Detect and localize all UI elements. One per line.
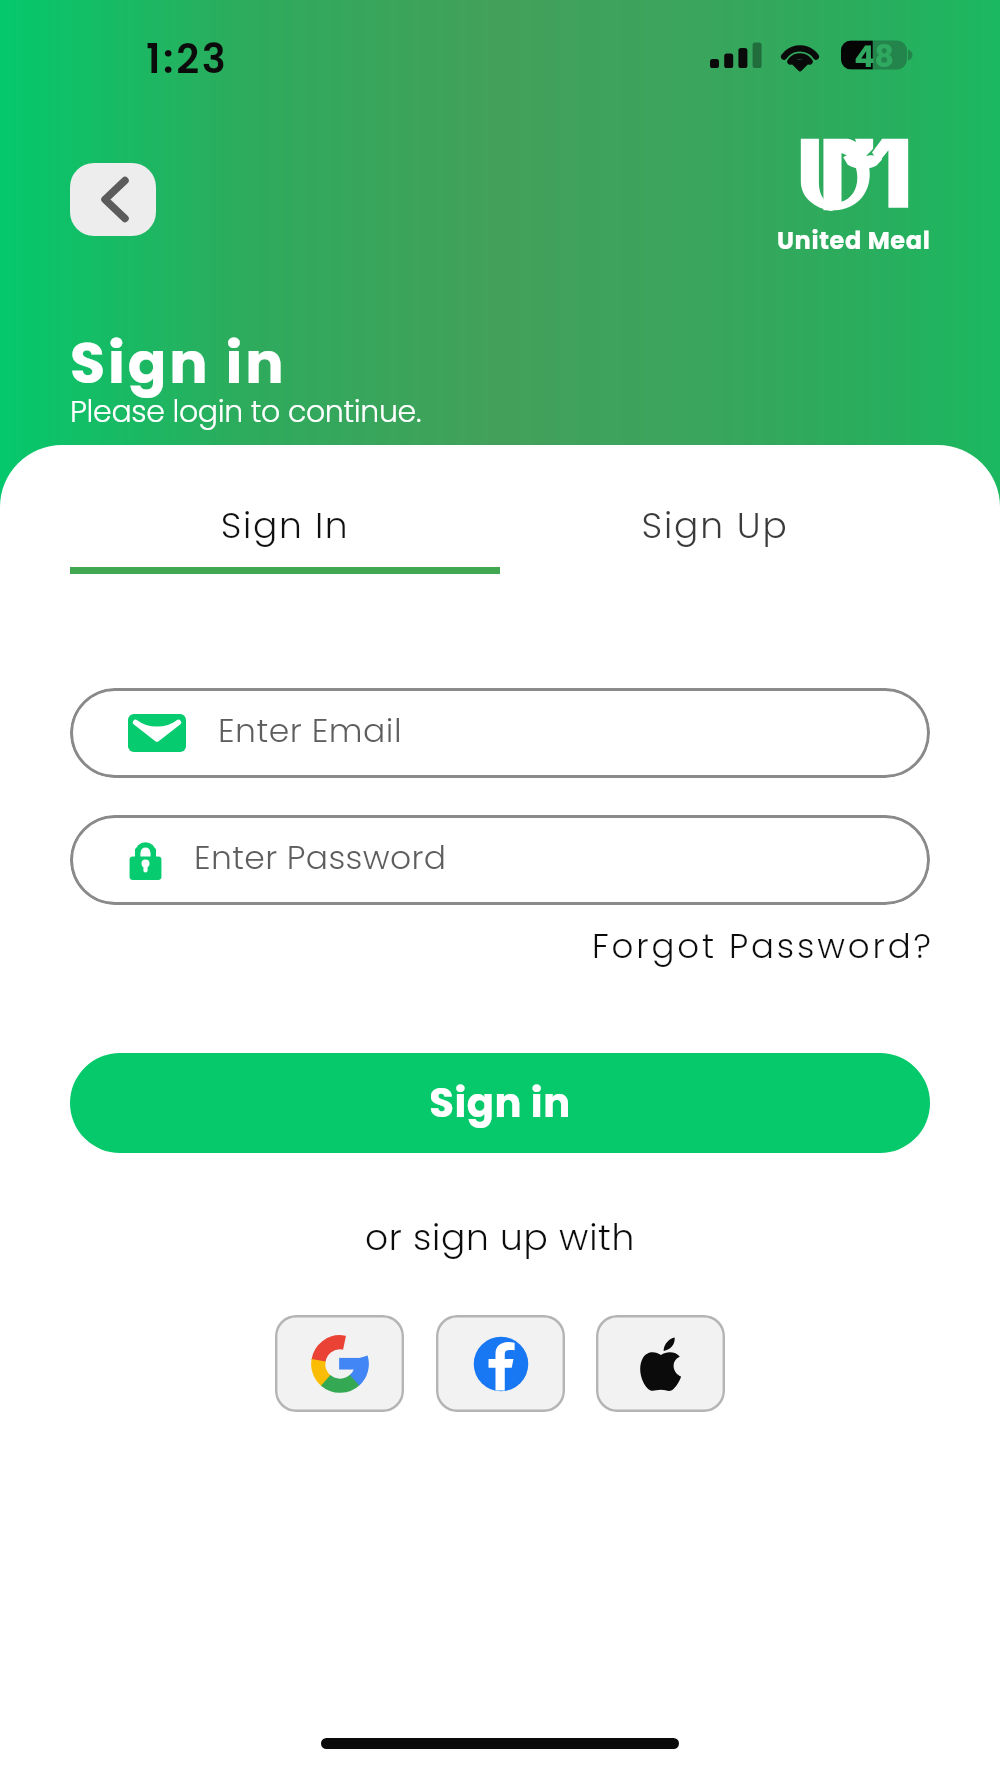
staticText: Enter Email [218, 707, 402, 753]
button[interactable] [590, 924, 934, 974]
staticText: or sign up with [0, 1212, 1000, 1270]
staticText: Please login to continue. [70, 391, 422, 433]
staticText: Forgot Password? [592, 922, 934, 970]
staticText: Sign In [70, 500, 500, 558]
button[interactable]: Sign in with Apple [596, 1315, 725, 1412]
staticText: 48 [841, 36, 907, 84]
staticText: Sign Up [500, 500, 930, 558]
button[interactable] [70, 815, 930, 905]
button[interactable]: Back [70, 163, 156, 236]
button[interactable]: Sign in with Google [275, 1315, 404, 1412]
button[interactable] [70, 688, 930, 778]
button[interactable] [500, 490, 930, 576]
button[interactable]: Sign in with Facebook [436, 1315, 565, 1412]
staticText: Sign in [0, 1075, 1000, 1139]
staticText: Sign in [70, 323, 287, 403]
staticText: Enter Password [194, 834, 447, 880]
staticText: United Meal [777, 224, 931, 258]
button[interactable] [70, 1053, 930, 1153]
staticText: 1:23 [146, 31, 229, 87]
button[interactable] [70, 490, 500, 576]
